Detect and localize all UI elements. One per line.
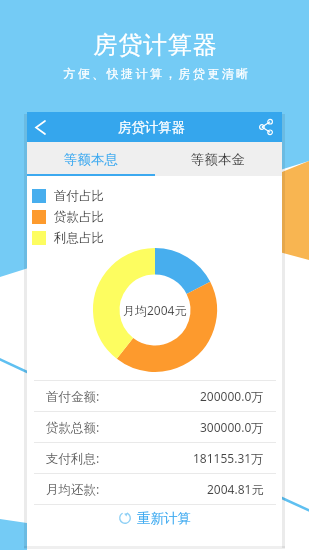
staticText: 300000.0万 bbox=[200, 419, 264, 435]
staticText: 支付利息: bbox=[46, 450, 100, 467]
staticText: 月均还款: bbox=[46, 481, 100, 498]
staticText: 首付金额: bbox=[46, 388, 100, 405]
staticText: 利息占比 bbox=[54, 230, 104, 246]
staticText: 贷款总额: bbox=[46, 419, 100, 436]
staticText: 方便、快捷计算，房贷更清晰 bbox=[5, 66, 309, 81]
button[interactable]: 重新计算 bbox=[27, 505, 282, 531]
staticText: 房贷计算器 bbox=[2, 30, 309, 60]
staticText: 贷款占比 bbox=[54, 209, 104, 225]
staticText: 2004.81元 bbox=[207, 481, 264, 497]
staticText: 等额本金 bbox=[191, 151, 245, 168]
staticText: 首付占比 bbox=[54, 188, 104, 204]
staticText: 200000.0万 bbox=[200, 388, 264, 404]
staticText: 房贷计算器 bbox=[53, 119, 250, 136]
button[interactable]: 等额本金 bbox=[154, 142, 282, 176]
button[interactable]: 等额本息 bbox=[27, 142, 154, 176]
staticText: 181155.31万 bbox=[193, 450, 264, 466]
button[interactable]: Share bbox=[250, 112, 282, 142]
staticText: 等额本息 bbox=[64, 151, 118, 168]
staticText: 重新计算 bbox=[137, 510, 191, 527]
button[interactable]: Back bbox=[27, 112, 53, 142]
staticText: 月均2004元 bbox=[123, 302, 187, 318]
